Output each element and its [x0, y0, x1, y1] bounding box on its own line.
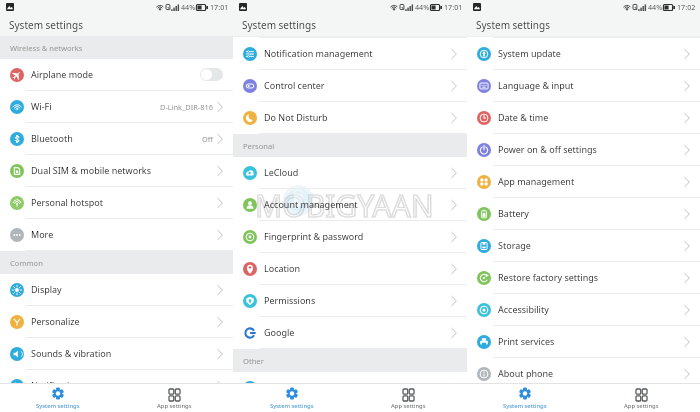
button[interactable]: Sounds & vibration — [0, 338, 233, 370]
staticText: 17:01 — [210, 2, 229, 12]
staticText: Notifications — [31, 379, 85, 391]
button[interactable]: Print services — [467, 326, 700, 358]
staticText: App management — [498, 175, 575, 187]
staticText: Airplane mode — [31, 68, 94, 80]
button[interactable]: App settings — [350, 384, 467, 412]
staticText: Apps — [264, 381, 286, 393]
button[interactable]: Fingerprint & password — [233, 221, 467, 253]
staticText: System settings — [36, 402, 80, 410]
staticText: Bluetooth — [31, 132, 73, 144]
button[interactable]: Bluetooth — [0, 123, 233, 155]
staticText: Print services — [498, 335, 555, 347]
button[interactable]: Notifications — [0, 370, 233, 402]
button[interactable]: More — [0, 219, 233, 251]
staticText: Restore factory settings — [498, 271, 599, 283]
staticText: Personalize — [31, 315, 80, 327]
button[interactable]: Do Not Disturb — [233, 102, 467, 134]
button[interactable]: Display — [0, 274, 233, 306]
button[interactable]: About phone — [467, 358, 700, 390]
staticText: System settings — [270, 402, 314, 410]
staticText: 44% — [415, 2, 430, 12]
button[interactable]: Wi-Fi — [0, 91, 233, 123]
button[interactable]: Restore factory settings — [467, 262, 700, 294]
button[interactable]: App management — [467, 166, 700, 198]
staticText: About phone — [498, 367, 554, 379]
staticText: Notification management — [264, 47, 373, 59]
button[interactable]: Dual SIM & mobile networks — [0, 155, 233, 187]
button[interactable]: Location — [233, 253, 467, 285]
button[interactable]: Google — [233, 317, 467, 349]
staticText: Sounds & vibration — [31, 347, 112, 359]
button[interactable]: Personal hotspot — [0, 187, 233, 219]
button[interactable]: System settings — [467, 384, 583, 412]
button[interactable]: Account management — [233, 189, 467, 221]
staticText: Display — [31, 283, 62, 295]
staticText: Language & input — [498, 79, 574, 91]
staticText: System settings — [503, 402, 547, 410]
staticText: Control center — [264, 79, 325, 91]
staticText: Do Not Disturb — [264, 111, 328, 123]
staticText: App settings — [391, 402, 426, 410]
staticText: Personal hotspot — [31, 196, 104, 208]
staticText: Battery — [498, 207, 529, 219]
button[interactable]: Date & time — [467, 102, 700, 134]
button[interactable]: App settings — [116, 384, 233, 412]
button[interactable]: System settings — [0, 384, 116, 412]
staticText: Common — [10, 258, 43, 268]
staticText: Fingerprint & password — [264, 230, 364, 242]
staticText: System update — [498, 47, 561, 59]
button[interactable]: Permissions — [233, 285, 467, 317]
staticText: MOBIGYAAN — [255, 185, 434, 226]
staticText: D-Link_DIR-816 — [160, 102, 213, 112]
staticText: LeCloud — [264, 166, 299, 178]
button[interactable]: Battery — [467, 198, 700, 230]
button[interactable]: App settings — [583, 384, 700, 412]
staticText: 44% — [648, 2, 663, 12]
staticText: System settings — [242, 18, 316, 32]
button[interactable]: System update — [467, 38, 700, 70]
staticText: Dual SIM & mobile networks — [31, 164, 151, 176]
button[interactable]: LeCloud — [233, 157, 467, 189]
staticText: 44% — [181, 2, 196, 12]
staticText: Power on & off settings — [498, 143, 597, 155]
staticText: Personal — [243, 141, 275, 151]
staticText: Other — [243, 356, 264, 366]
button[interactable]: Airplane mode — [0, 59, 233, 91]
staticText: App settings — [157, 402, 192, 410]
staticText: Google — [264, 326, 295, 338]
button[interactable]: Apps — [233, 372, 467, 404]
button[interactable]: Control center — [233, 70, 467, 102]
button[interactable]: Notification management — [233, 38, 467, 70]
button[interactable]: Personalize — [0, 306, 233, 338]
button[interactable]: Accessibility — [467, 294, 700, 326]
staticText: Date & time — [498, 111, 549, 123]
button[interactable]: Storage — [467, 230, 700, 262]
button[interactable]: Language & input — [467, 70, 700, 102]
staticText: 17:01 — [444, 2, 463, 12]
staticText: Storage — [498, 239, 531, 251]
staticText: Account management — [264, 198, 358, 210]
staticText: System settings — [476, 18, 550, 32]
staticText: Location — [264, 262, 301, 274]
staticText: System settings — [9, 18, 83, 32]
staticText: More — [31, 228, 54, 240]
staticText: Accessibility — [498, 303, 549, 315]
staticText: Wireless & networks — [10, 43, 83, 53]
staticText: Permissions — [264, 294, 316, 306]
button[interactable]: Power on & off settings — [467, 134, 700, 166]
staticText: 17:02 — [677, 2, 696, 12]
staticText: Wi-Fi — [31, 100, 52, 112]
staticText: Off — [202, 134, 213, 144]
staticText: App settings — [624, 402, 659, 410]
button[interactable]: System settings — [233, 384, 350, 412]
